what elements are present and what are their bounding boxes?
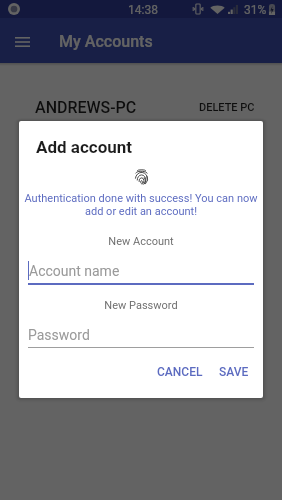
- staticText: 31%: [244, 3, 267, 17]
- staticText: Account name: [29, 263, 120, 279]
- button[interactable]: SAVE: [213, 359, 255, 385]
- staticText: 14:38: [128, 3, 158, 17]
- staticText: Add account: [36, 137, 133, 157]
- staticText: Password: [28, 327, 90, 343]
- staticText: Authentication done with success! You ca…: [21, 192, 261, 218]
- button[interactable]: Password: [28, 327, 254, 348]
- staticText: DELETE PC: [199, 101, 255, 114]
- staticText: CANCEL: [157, 365, 203, 379]
- staticText: SAVE: [219, 365, 249, 379]
- staticText: New Account: [19, 235, 263, 248]
- staticText: ANDREWS-PC: [35, 98, 137, 117]
- button[interactable]: Open navigation menu: [0, 18, 45, 63]
- staticText: My Accounts: [59, 32, 153, 51]
- button[interactable]: CANCEL: [151, 359, 209, 385]
- button[interactable]: Account name: [28, 261, 254, 285]
- button[interactable]: ANDREWS-PC: [17, 81, 265, 173]
- staticText: New Password: [19, 299, 263, 312]
